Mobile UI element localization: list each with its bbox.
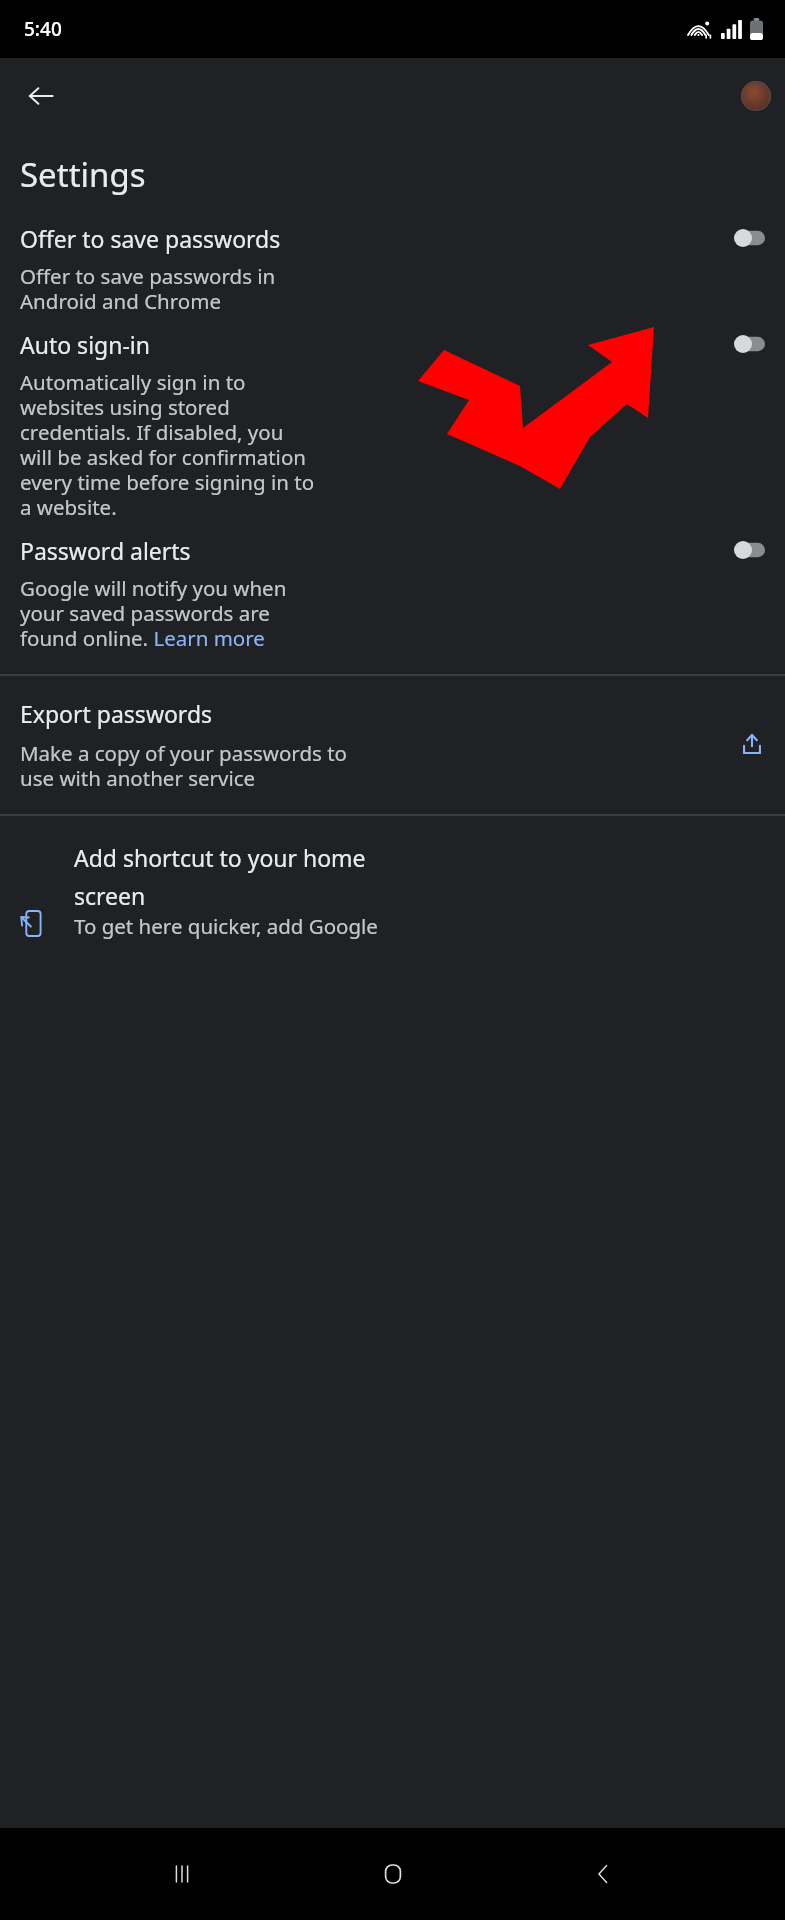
staticText: Add shortcut to your home screen (74, 842, 366, 912)
button[interactable]: Password alerts (0, 529, 785, 660)
button[interactable]: Export (739, 732, 765, 758)
staticText: Make a copy of your passwords to use wit… (20, 739, 347, 792)
staticText: 5:40 (24, 16, 62, 42)
staticText: Offer to save passwords in Android and C… (20, 262, 276, 315)
button[interactable]: Auto sign-in (0, 323, 785, 529)
staticText: Settings (20, 152, 146, 197)
button[interactable]: Export passwords (0, 676, 785, 814)
button[interactable]: Toggle (734, 335, 765, 353)
button[interactable]: Account (741, 81, 771, 111)
button[interactable]: Recents (154, 1846, 210, 1902)
staticText: Offer to save passwords (20, 223, 281, 254)
button[interactable]: Back (14, 69, 68, 123)
staticText: Google will notify you when your saved p… (20, 574, 287, 652)
button[interactable]: Back (575, 1846, 631, 1902)
staticText: Export passwords (20, 698, 213, 729)
button[interactable]: Toggle (734, 229, 765, 247)
button[interactable]: Offer to save passwords (0, 217, 785, 323)
button[interactable]: Add shortcut to your home screen (0, 816, 785, 940)
button[interactable]: Home (365, 1846, 421, 1902)
button[interactable]: Toggle (734, 541, 765, 559)
staticText: To get here quicker, add Google (74, 912, 378, 940)
staticText: Automatically sign in to websites using … (20, 368, 315, 521)
staticText: Auto sign-in (20, 329, 150, 360)
staticText: Password alerts (20, 535, 191, 566)
